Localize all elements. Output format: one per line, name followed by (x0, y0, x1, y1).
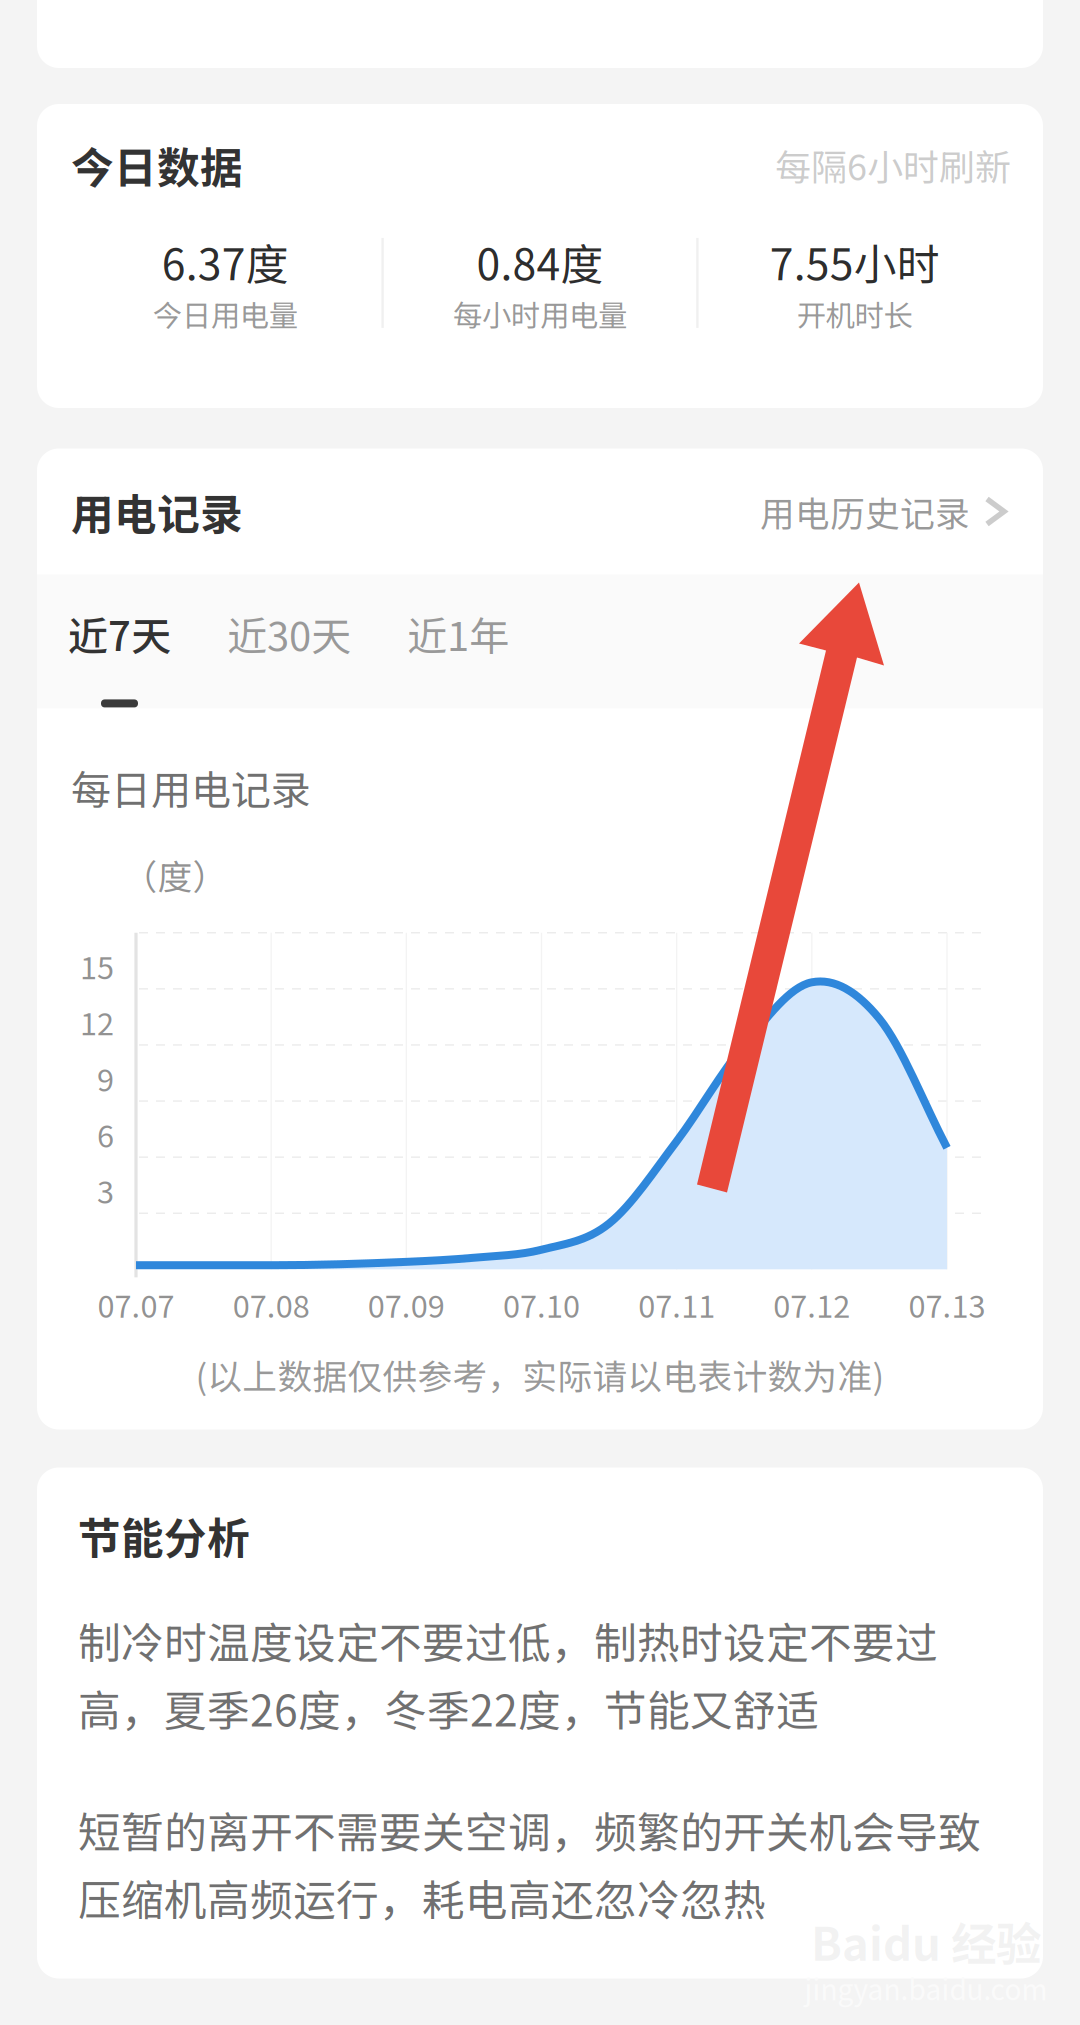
staticText: 短暂的离开不需要关空调，频繁的开关机会导致压缩机高频运行，耗电高还忽冷忽热 (78, 1799, 981, 1928)
staticText: 6 (97, 1112, 114, 1156)
staticText: 用电历史记录 (760, 486, 970, 537)
staticText: 制冷时温度设定不要过低，制热时设定不要过高，夏季26度，冬季22度，节能又舒适 (78, 1609, 938, 1739)
staticText: 07.08 (233, 1282, 310, 1326)
staticText: 15 (80, 944, 114, 988)
staticText: 开机时长 (797, 293, 913, 335)
staticText: 12 (80, 1000, 114, 1044)
staticText: 07.07 (97, 1282, 174, 1326)
button[interactable]: 用电记录 (37, 448, 1043, 574)
staticText: 今日用电量 (153, 293, 298, 335)
staticText: 每日用电记录 (71, 758, 311, 816)
staticText: 近1年 (407, 604, 509, 662)
staticText: 今日数据 (71, 134, 243, 196)
staticText: 7.55小时 (770, 231, 940, 293)
staticText: 07.10 (503, 1282, 580, 1326)
staticText: 用电记录 (71, 481, 243, 542)
button[interactable]: 近7天 (40, 574, 199, 708)
staticText: （度） (122, 850, 227, 900)
staticText: 07.09 (368, 1282, 445, 1326)
staticText: (以上数据仅供参考，实际请以电表计数为准) (195, 1349, 884, 1399)
staticText: 近30天 (227, 604, 351, 662)
staticText: Baidu 经验 (811, 1908, 1041, 1974)
staticText: 07.13 (908, 1282, 985, 1326)
staticText: 每隔6小时刷新 (775, 139, 1011, 191)
staticText: 07.12 (773, 1282, 850, 1326)
button[interactable]: 近1年 (379, 574, 537, 708)
staticText: 近7天 (68, 604, 171, 662)
staticText: 3 (97, 1168, 114, 1212)
button[interactable]: 近30天 (199, 574, 379, 708)
staticText: 6.37度 (162, 231, 289, 293)
staticText: 节能分析 (78, 1504, 250, 1566)
staticText: 9 (97, 1056, 114, 1100)
staticText: 07.11 (638, 1282, 715, 1326)
staticText: 0.84度 (476, 231, 603, 293)
staticText: jingyan.baidu.com (804, 1968, 1047, 2008)
staticText: 每小时用电量 (453, 293, 627, 335)
